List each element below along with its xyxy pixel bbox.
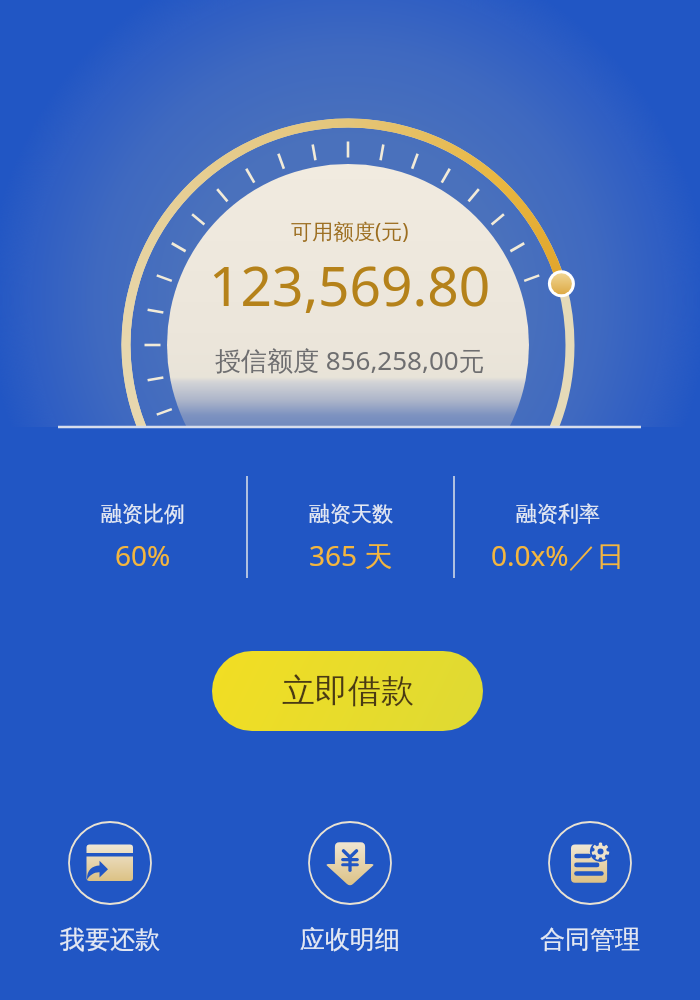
staticText: 可用额度(元) (291, 217, 409, 246)
staticText: 合同管理 (540, 924, 640, 955)
staticText: 0.0x%／日 (491, 536, 625, 574)
button[interactable]: 我要还款 (30, 821, 190, 955)
staticText: 融资比例 (101, 501, 185, 527)
staticText: 123,569.80 (209, 247, 491, 322)
staticText: 融资天数 (309, 501, 393, 527)
button[interactable]: 融资比例 (40, 481, 246, 574)
staticText: 授信额度 856,258,00元 (215, 342, 485, 378)
staticText: 365 天 (309, 536, 393, 574)
staticText: 我要还款 (60, 924, 160, 955)
button[interactable]: 立即借款 (212, 651, 483, 731)
staticText: 应收明细 (300, 924, 400, 955)
button[interactable]: 融资天数 (248, 481, 453, 574)
button[interactable]: 应收明细 (270, 821, 430, 955)
staticText: 融资利率 (516, 501, 600, 527)
button[interactable]: 融资利率 (455, 481, 660, 574)
staticText: 60% (115, 536, 171, 574)
button[interactable]: 合同管理 (510, 821, 670, 955)
staticText: 立即借款 (282, 670, 414, 712)
